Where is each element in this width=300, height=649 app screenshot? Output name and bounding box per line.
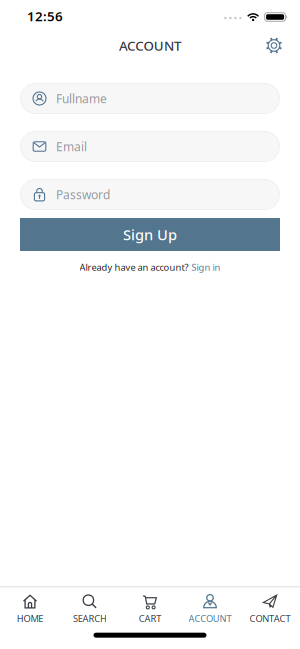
button[interactable]: Sign Up (20, 218, 280, 251)
staticText: Already have an account? (79, 261, 188, 273)
staticText: ACCOUNT (119, 37, 181, 54)
staticText: Email (56, 138, 87, 154)
button[interactable]: Settings (265, 36, 300, 54)
staticText: CONTACT (250, 612, 290, 625)
staticText: HOME (17, 612, 43, 625)
button[interactable]: ACCOUNT (180, 594, 240, 625)
button[interactable]: HOME (0, 594, 60, 625)
staticText: Password (56, 186, 110, 202)
staticText: Sign Up (123, 225, 177, 244)
button[interactable]: Email (20, 131, 280, 162)
button[interactable]: CONTACT (240, 594, 300, 625)
button[interactable]: SEARCH (60, 594, 120, 625)
button[interactable]: Password (20, 179, 280, 210)
staticText: SEARCH (73, 612, 107, 625)
button[interactable]: Sign in (191, 261, 220, 273)
staticText: 12:56 (27, 7, 63, 25)
staticText: CART (139, 612, 161, 625)
staticText: Sign in (191, 261, 220, 273)
button[interactable]: CART (120, 594, 180, 625)
button[interactable]: Fullname (20, 83, 280, 114)
staticText: ACCOUNT (189, 612, 231, 625)
staticText: Fullname (56, 90, 107, 106)
